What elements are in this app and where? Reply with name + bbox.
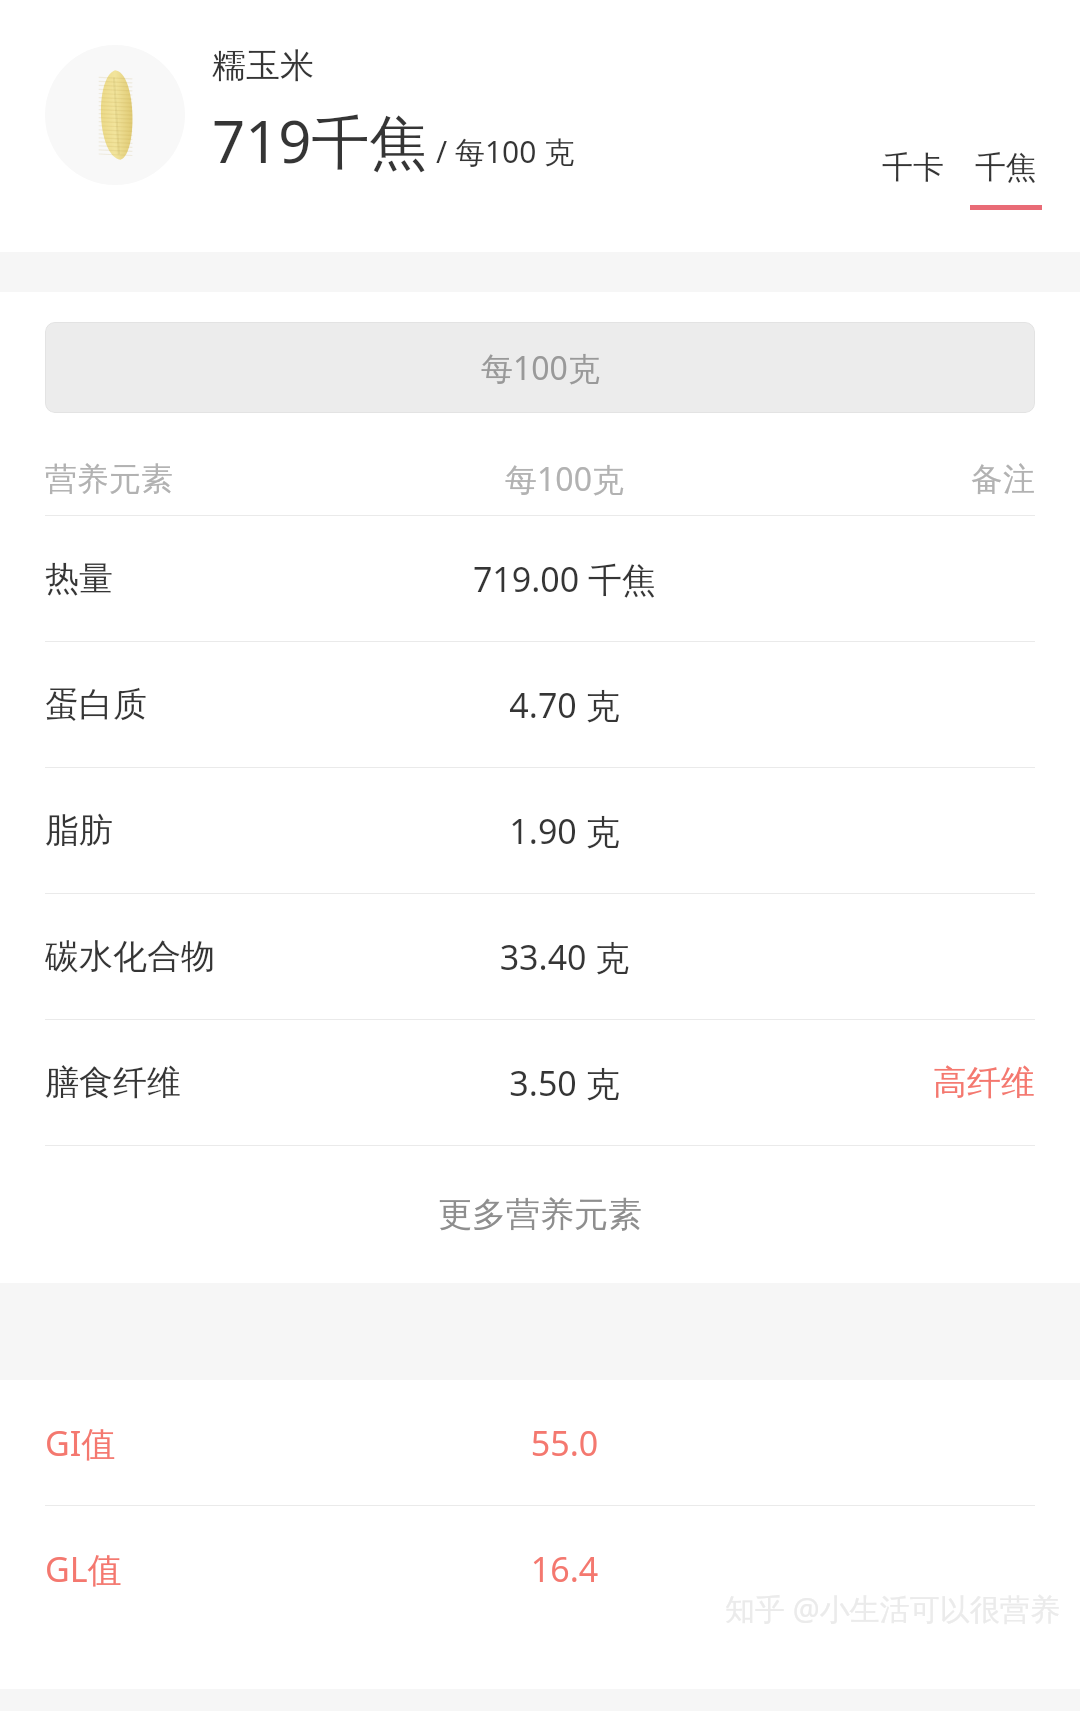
staticText: 33.40 克 (365, 934, 764, 980)
button[interactable]: GI值 (0, 1380, 1080, 1505)
staticText: 4.70 克 (365, 682, 764, 728)
staticText: GI值 (45, 1420, 365, 1466)
staticText: 每100克 (365, 457, 764, 501)
staticText: 719千焦 (212, 101, 428, 180)
staticText: 千卡 (882, 148, 944, 187)
button[interactable]: 千卡 (878, 148, 948, 187)
staticText: / 每100 克 (436, 131, 575, 172)
staticText: 高纤维 (764, 1061, 1035, 1104)
staticText: 营养元素 (45, 459, 365, 499)
staticText: 碳水化合物 (45, 935, 365, 978)
button[interactable]: Food photo (45, 45, 185, 185)
staticText: 千焦 (975, 148, 1037, 187)
staticText: 知乎 @小生活可以很营养 (725, 1588, 1060, 1629)
staticText: 备注 (764, 459, 1035, 499)
staticText: 1.90 克 (365, 808, 764, 854)
staticText: 3.50 克 (365, 1060, 764, 1106)
button[interactable]: 蛋白质 (0, 642, 1080, 767)
staticText: 每100克 (481, 346, 600, 390)
button[interactable]: 更多营养元素 (0, 1146, 1080, 1283)
staticText: 热量 (45, 557, 365, 600)
button[interactable]: 热量 (0, 516, 1080, 641)
button[interactable]: 脂肪 (0, 768, 1080, 893)
button[interactable]: 千焦 (970, 148, 1042, 210)
staticText: 更多营养元素 (438, 1193, 642, 1236)
staticText: 16.4 (365, 1546, 764, 1592)
staticText: 膳食纤维 (45, 1061, 365, 1104)
button[interactable]: 碳水化合物 (0, 894, 1080, 1019)
staticText: 719.00 千焦 (365, 556, 764, 602)
button[interactable]: 膳食纤维 (0, 1020, 1080, 1145)
staticText: 蛋白质 (45, 683, 365, 726)
staticText: 脂肪 (45, 809, 365, 852)
button[interactable]: GL值 (0, 1506, 1080, 1631)
staticText: 糯玉米 (212, 44, 314, 87)
staticText: GL值 (45, 1546, 365, 1592)
button[interactable]: 每100克 (45, 322, 1035, 413)
staticText: 55.0 (365, 1420, 764, 1466)
